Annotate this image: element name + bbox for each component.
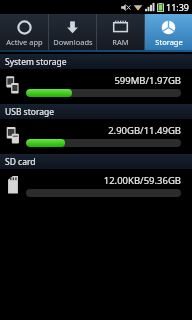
button[interactable]: USB storage <box>0 104 192 151</box>
staticText: RAM <box>112 37 129 47</box>
other: SD card <box>5 175 22 195</box>
other: USB storage <box>5 125 22 145</box>
staticText: 12.00KB/59.36GB <box>26 174 181 187</box>
staticText: 11:39 <box>166 1 190 13</box>
button[interactable]: SD card <box>0 154 192 201</box>
button[interactable]: System storage <box>0 54 192 101</box>
button[interactable]: Storage <box>145 14 192 50</box>
staticText: SD card <box>5 156 36 168</box>
button[interactable]: Active app <box>0 14 48 50</box>
other: System storage <box>5 75 22 95</box>
staticText: 2.90GB/11.49GB <box>26 124 181 137</box>
staticText: Active app <box>6 37 43 47</box>
staticText: Downloads <box>53 37 93 47</box>
staticText: 599MB/1.97GB <box>26 74 181 87</box>
button[interactable]: Downloads <box>49 14 96 50</box>
staticText: System storage <box>5 56 67 68</box>
button[interactable]: RAM <box>97 14 144 50</box>
staticText: USB storage <box>5 106 55 118</box>
staticText: Storage <box>155 37 183 47</box>
